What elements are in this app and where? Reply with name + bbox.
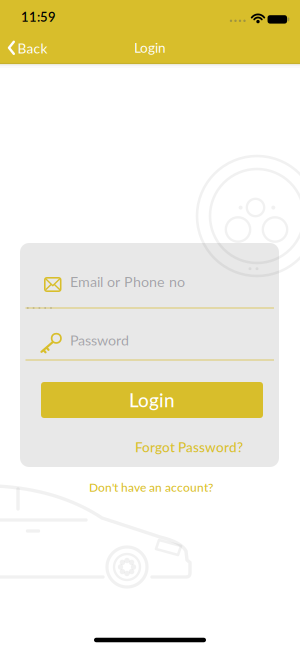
staticText: Email or Phone no xyxy=(70,273,185,290)
staticText: Login xyxy=(134,39,166,56)
staticText: Login xyxy=(129,389,175,411)
button[interactable]: Email or Phone no xyxy=(24,266,274,302)
button[interactable]: Login xyxy=(41,382,263,418)
staticText: Back xyxy=(18,40,48,56)
button[interactable]: Don't have an account? xyxy=(89,480,213,494)
button[interactable]: Back xyxy=(4,32,56,62)
staticText: Forgot Password? xyxy=(135,439,243,455)
staticText: 11:59 xyxy=(21,9,56,25)
button[interactable]: Forgot Password? xyxy=(135,439,243,455)
staticText: Password xyxy=(70,331,129,348)
button[interactable]: Password xyxy=(24,322,274,358)
staticText: Don't have an account? xyxy=(89,480,213,494)
